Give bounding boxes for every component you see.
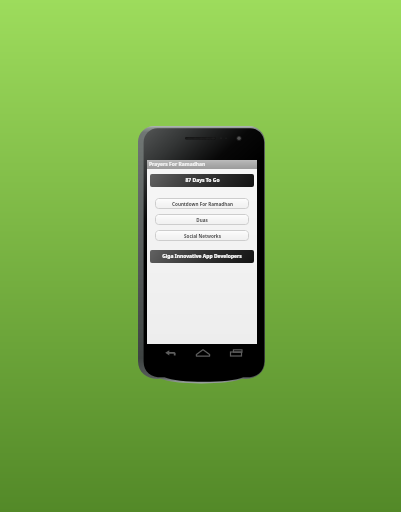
button[interactable]: Recent apps [226, 346, 246, 360]
staticText: 87 Days To Go [185, 177, 220, 184]
staticText: Prayers For Ramadhan [149, 161, 206, 168]
staticText: Social Networks [184, 233, 221, 239]
button[interactable]: Countdown For Ramadhan [155, 198, 249, 209]
button[interactable]: Duas [155, 214, 249, 225]
button[interactable]: Social Networks [155, 230, 249, 241]
button[interactable]: Home [193, 346, 213, 360]
button[interactable]: 87 Days To Go [150, 174, 254, 187]
staticText: Countdown For Ramadhan [172, 201, 233, 207]
staticText: Duas [196, 217, 208, 223]
staticText: Giga Innovative App Developers [162, 253, 242, 260]
button[interactable]: Back [161, 346, 181, 360]
button[interactable]: Giga Innovative App Developers [150, 250, 254, 263]
